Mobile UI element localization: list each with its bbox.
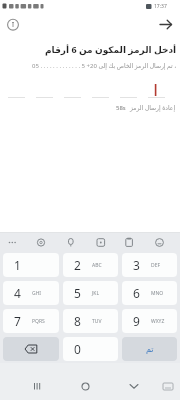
staticText: ABC: [92, 262, 102, 269]
staticText: تم إرسال الرمز الخاص بك إلى 20+ 5 . . . …: [32, 62, 177, 70]
button[interactable]: 0: [63, 337, 118, 361]
staticText: 17:37: [154, 3, 167, 10]
staticText: 4: [14, 285, 21, 301]
staticText: إعادة إرسال الرمز: [130, 104, 176, 112]
button[interactable]: [155, 16, 175, 36]
staticText: 1: [14, 257, 21, 273]
staticText: 3: [133, 257, 140, 273]
button[interactable]: تم: [122, 337, 177, 361]
button[interactable]: 6: [122, 281, 177, 305]
button[interactable]: 5: [63, 281, 118, 305]
button[interactable]: إعادة إرسال الرمز: [116, 102, 178, 114]
staticText: 2: [74, 257, 81, 273]
staticText: تم: [146, 345, 154, 354]
staticText: WXYZ: [151, 318, 165, 325]
button[interactable]: 9: [122, 309, 177, 333]
staticText: 6: [133, 285, 140, 301]
staticText: PQRS: [32, 318, 45, 325]
staticText: 8: [74, 313, 81, 329]
staticText: 5: [74, 285, 81, 301]
button[interactable]: 2: [63, 253, 118, 277]
button[interactable]: 3: [122, 253, 177, 277]
staticText: 7: [14, 313, 21, 329]
button[interactable]: [0, 233, 180, 251]
staticText: 9: [133, 313, 140, 329]
staticText: TUV: [92, 318, 102, 325]
button[interactable]: [3, 337, 59, 361]
staticText: 0: [74, 341, 81, 357]
staticText: GHI: [32, 290, 42, 297]
button[interactable]: 8: [63, 309, 118, 333]
button[interactable]: 7: [3, 309, 59, 333]
staticText: 58s: [116, 104, 126, 112]
button[interactable]: 4: [3, 281, 59, 305]
button[interactable]: [5, 17, 21, 33]
staticText: JKL: [92, 290, 100, 297]
staticText: MNO: [151, 290, 164, 297]
staticText: DEF: [151, 262, 161, 269]
button[interactable]: 1: [3, 253, 59, 277]
staticText: أدخل الرمز المكون من 6 أرقام: [45, 43, 177, 55]
